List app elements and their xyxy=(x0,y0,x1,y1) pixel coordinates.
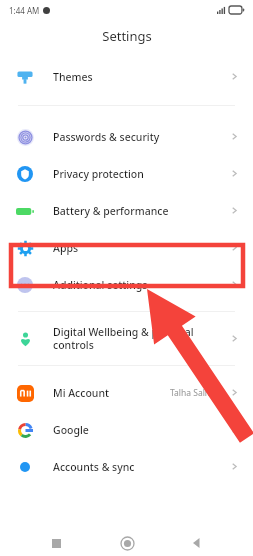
staticText: Battery & performance xyxy=(53,204,230,218)
button[interactable]: Home xyxy=(112,530,142,556)
button[interactable]: Back xyxy=(182,530,212,556)
staticText: Additional settings xyxy=(53,278,230,292)
button[interactable]: Additional settings xyxy=(0,266,253,303)
button[interactable]: Recents xyxy=(41,530,71,556)
staticText: 1:44 AM xyxy=(9,5,40,16)
button[interactable]: Accounts & sync xyxy=(0,448,253,485)
staticText: Talha Salman xyxy=(170,387,223,399)
staticText: Apps xyxy=(53,241,230,255)
button[interactable]: Google xyxy=(0,411,253,448)
button[interactable]: Battery & performance xyxy=(0,192,253,229)
button[interactable]: Privacy protection xyxy=(0,155,253,192)
button[interactable]: Themes xyxy=(0,58,253,95)
staticText: Digital Wellbeing & parental controls xyxy=(53,325,230,352)
staticText: Accounts & sync xyxy=(53,460,230,474)
staticText: Privacy protection xyxy=(53,167,230,181)
button[interactable]: Mi Account xyxy=(0,374,253,411)
staticText: Settings xyxy=(102,27,152,45)
button[interactable]: Passwords & security xyxy=(0,118,253,155)
staticText: Themes xyxy=(53,70,230,84)
button[interactable]: Apps xyxy=(0,229,253,266)
staticText: Mi Account xyxy=(53,386,170,400)
button[interactable]: Digital Wellbeing & parental controls xyxy=(0,320,253,357)
staticText: Google xyxy=(53,423,230,437)
staticText: Passwords & security xyxy=(53,130,230,144)
